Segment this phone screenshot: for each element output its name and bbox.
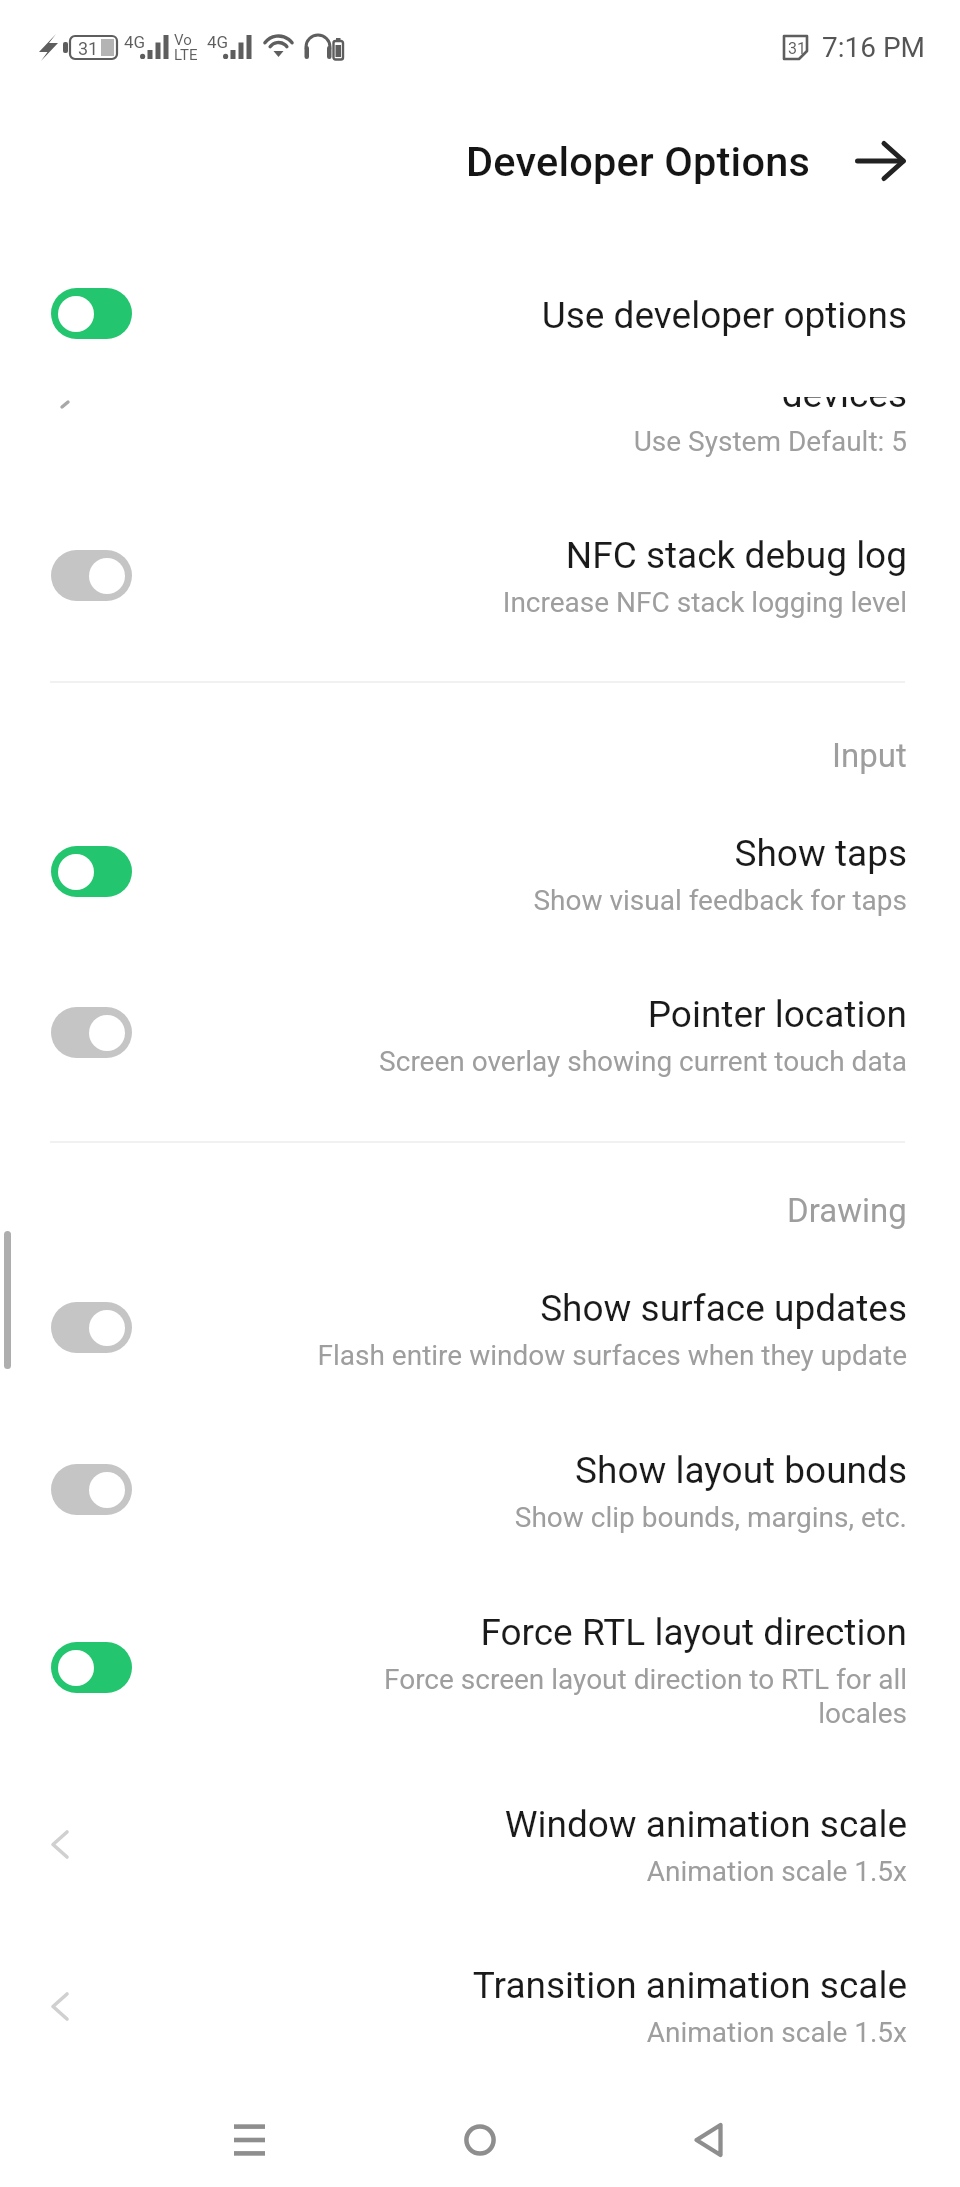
staticText: Increase NFC stack logging level (502, 586, 907, 619)
staticText: Window animation scale (504, 1803, 907, 1846)
staticText: Force RTL layout direction (480, 1611, 907, 1654)
button[interactable]: Show layout bounds (0, 1415, 960, 1555)
button[interactable]: Recent apps (208, 2099, 290, 2181)
staticText: Screen overlay showing current touch dat… (379, 1045, 907, 1078)
staticText: Show surface updates (540, 1287, 907, 1330)
staticText: 4G (124, 32, 146, 52)
button[interactable]: NFC stack debug log (0, 478, 960, 660)
staticText: 31 (788, 39, 806, 58)
staticText: devices (781, 373, 907, 416)
staticText: Drawing (787, 1191, 907, 1230)
staticText: Transition animation scale (472, 1964, 907, 2007)
staticText: Show layout bounds (575, 1449, 907, 1492)
staticText: Animation scale 1.5x (646, 2016, 907, 2049)
button[interactable]: Home (439, 2099, 521, 2181)
button[interactable]: Use developer options (0, 262, 960, 360)
button[interactable]: devices (0, 360, 960, 478)
staticText: NFC stack debug log (565, 534, 907, 577)
staticText: Animation scale 1.5x (646, 1855, 907, 1888)
staticText: Use System Default: 5 (633, 425, 907, 458)
button[interactable]: Back (667, 2099, 749, 2181)
staticText: 7:16 PM (822, 31, 926, 64)
button[interactable]: Pointer location (0, 945, 960, 1100)
staticText: Show clip bounds, margins, etc. (514, 1501, 907, 1534)
button[interactable]: Transition animation scale (0, 1920, 960, 2070)
staticText: 31 (78, 38, 99, 59)
button[interactable]: Force RTL layout direction (0, 1575, 960, 1745)
staticText: Flash entire window surfaces when they u… (317, 1339, 907, 1372)
staticText: Use developer options (541, 294, 907, 337)
button[interactable]: Window animation scale (0, 1760, 960, 1910)
button[interactable]: Show taps (0, 800, 960, 930)
staticText: Developer Options (466, 137, 810, 186)
button[interactable]: Show surface updates (0, 1250, 960, 1395)
staticText: Show visual feedback for taps (533, 884, 907, 917)
staticText: Force screen layout direction to RTL for… (300, 1663, 907, 1730)
staticText: Pointer location (647, 993, 907, 1036)
staticText: Show taps (734, 832, 907, 875)
staticText: 4G (207, 32, 229, 52)
button[interactable]: Back (847, 128, 913, 194)
staticText: Vo LTE (174, 31, 198, 64)
staticText: Input (832, 736, 907, 775)
